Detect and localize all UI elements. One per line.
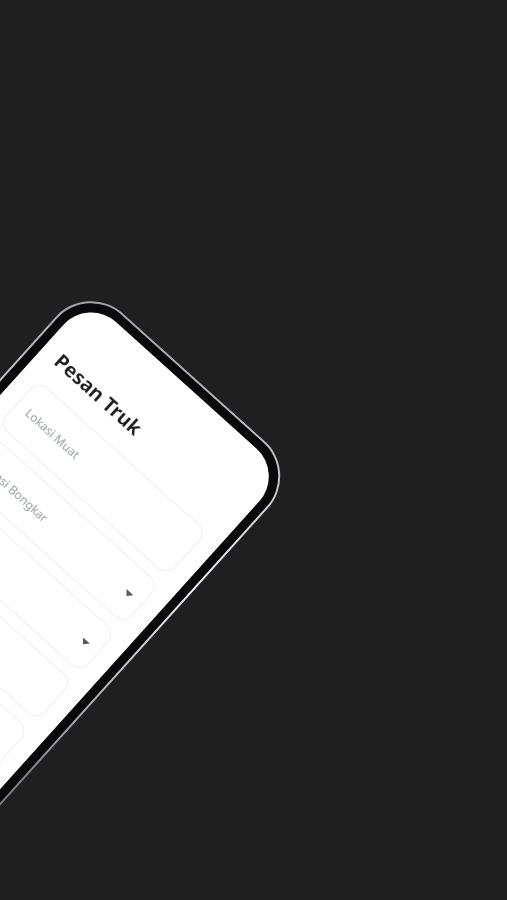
button[interactable]: Lokasi Muat <box>0 379 207 577</box>
staticText: Pesan Truk <box>49 348 149 441</box>
button[interactable]: Tanggal Muat <box>0 577 30 770</box>
staticText: Lokasi Bongkar <box>0 455 52 525</box>
other: Expand Lokasi Bongkar <box>122 587 135 600</box>
staticText: Lokasi Muat <box>22 405 84 463</box>
button[interactable]: Berat Muatan <box>0 529 73 722</box>
button[interactable]: Jenis Muatan <box>0 481 117 673</box>
other: Expand Jenis Muatan <box>79 635 91 648</box>
button[interactable]: Lokasi Bongkar <box>0 432 160 625</box>
